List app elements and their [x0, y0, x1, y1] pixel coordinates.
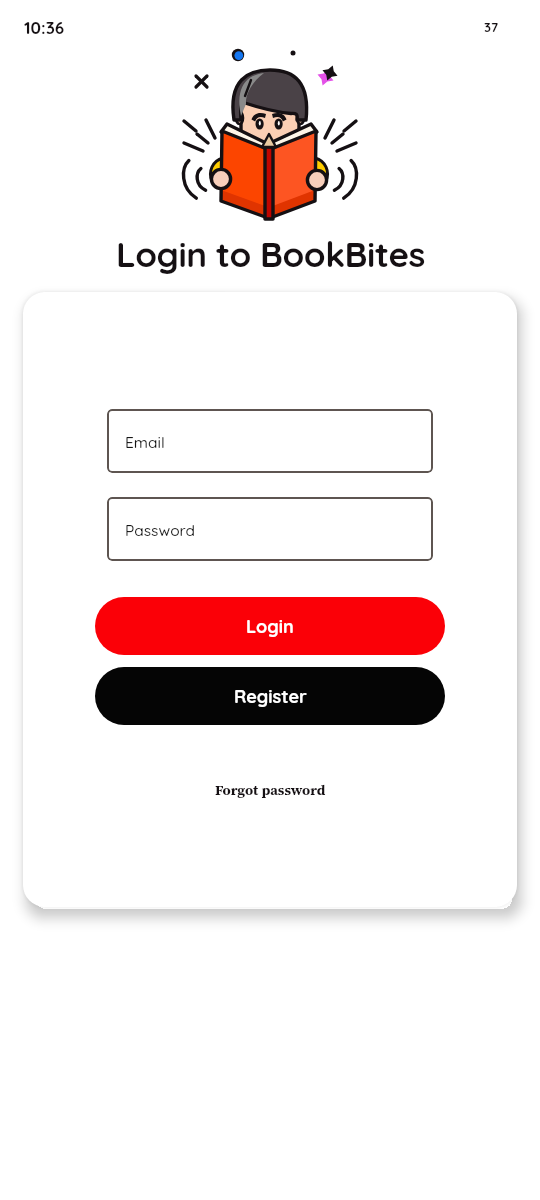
button[interactable]: Register	[95, 667, 445, 725]
button[interactable]: Email	[107, 409, 433, 473]
staticText: Register	[234, 685, 307, 708]
staticText: Email	[125, 432, 165, 451]
button[interactable]: Login	[95, 597, 445, 655]
staticText: Password	[125, 520, 196, 539]
staticText: Login	[246, 615, 294, 638]
button[interactable]: Forgot password	[209, 774, 332, 806]
staticText: 37	[484, 19, 499, 35]
button[interactable]: Password	[107, 497, 433, 561]
staticText: Login to BookBites	[116, 232, 425, 276]
staticText: 10:36	[24, 17, 65, 38]
